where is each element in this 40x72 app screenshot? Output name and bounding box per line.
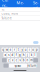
staticText: To: bbox=[1, 8, 5, 11]
button[interactable]: space bbox=[9, 63, 27, 68]
staticText: h bbox=[23, 53, 25, 57]
staticText: q bbox=[2, 48, 4, 51]
button[interactable]: q bbox=[1, 48, 5, 52]
button[interactable]: d bbox=[11, 53, 14, 57]
button[interactable]: return bbox=[28, 63, 37, 68]
button[interactable]: e bbox=[9, 48, 12, 52]
staticText: w bbox=[6, 48, 8, 51]
staticText: Cc/Bcc, From: bbox=[1, 12, 18, 15]
button[interactable]: m bbox=[30, 58, 33, 62]
staticText: l bbox=[34, 53, 35, 57]
staticText: k bbox=[31, 53, 32, 57]
staticText: u bbox=[25, 48, 27, 51]
button[interactable]: v bbox=[18, 58, 22, 62]
staticText: Subject: bbox=[1, 16, 12, 20]
button[interactable]: k bbox=[30, 53, 33, 57]
staticText: t bbox=[18, 48, 19, 51]
staticText: e bbox=[10, 48, 12, 51]
staticText: a bbox=[4, 53, 5, 57]
button[interactable]: a bbox=[3, 53, 7, 57]
button[interactable]: z bbox=[7, 58, 10, 62]
staticText: i bbox=[29, 48, 30, 51]
button[interactable]: t bbox=[16, 48, 20, 52]
staticText: Send bbox=[33, 0, 38, 10]
button[interactable]: u bbox=[24, 48, 27, 52]
button[interactable]: Send bbox=[32, 0, 38, 10]
button[interactable]: x bbox=[11, 58, 14, 62]
button[interactable]: y bbox=[20, 48, 23, 52]
button[interactable]: p bbox=[35, 48, 38, 52]
staticText: space bbox=[14, 64, 21, 67]
button[interactable]: r bbox=[13, 48, 16, 52]
staticText: f bbox=[16, 53, 17, 57]
staticText: Cancel bbox=[2, 0, 8, 13]
staticText: z bbox=[8, 58, 9, 62]
button[interactable]: Shift bbox=[33, 58, 38, 62]
button[interactable]: s bbox=[7, 53, 10, 57]
staticText: o bbox=[32, 48, 34, 51]
button[interactable]: n bbox=[26, 58, 29, 62]
button[interactable]: o bbox=[31, 48, 35, 52]
staticText: j bbox=[27, 53, 28, 57]
button[interactable]: h bbox=[22, 53, 25, 57]
button[interactable]: f bbox=[15, 53, 18, 57]
staticText: c bbox=[16, 58, 17, 62]
button[interactable]: Cancel bbox=[1, 0, 8, 13]
button[interactable]: Shift bbox=[2, 58, 7, 62]
staticText: b bbox=[23, 58, 25, 62]
staticText: g bbox=[19, 53, 21, 57]
staticText: d bbox=[11, 53, 13, 57]
button[interactable]: Send bbox=[33, 41, 38, 44]
button[interactable]: l bbox=[33, 53, 37, 57]
staticText: y bbox=[21, 48, 22, 51]
staticText: r bbox=[14, 48, 15, 51]
staticText: New Message bbox=[16, 0, 24, 16]
staticText: n bbox=[26, 58, 28, 62]
staticText: s bbox=[8, 53, 9, 57]
button[interactable]: w bbox=[5, 48, 8, 52]
staticText: p bbox=[36, 48, 38, 51]
button[interactable]: g bbox=[18, 53, 22, 57]
button[interactable]: Shift bbox=[3, 63, 8, 68]
button[interactable]: j bbox=[26, 53, 29, 57]
button[interactable]: i bbox=[28, 48, 31, 52]
button[interactable]: b bbox=[22, 58, 25, 62]
button[interactable]: c bbox=[15, 58, 18, 62]
staticText: return bbox=[28, 64, 37, 67]
staticText: x bbox=[12, 58, 13, 62]
staticText: m bbox=[30, 58, 32, 62]
